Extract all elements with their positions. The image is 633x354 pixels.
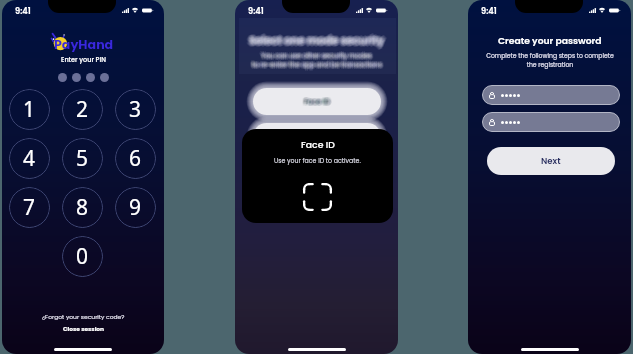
staticText: You can use other security modes [263,51,374,60]
button[interactable]: 4 [9,138,50,179]
staticText: Select one mode security [251,33,386,48]
staticText: Face ID [303,99,329,109]
staticText: Select one mode security [250,33,385,48]
staticText: Face ID [303,96,329,106]
staticText: Select one mode security [247,34,382,49]
staticText: to re-enter the app and be transactions [252,62,382,71]
staticText: 6 [129,144,142,173]
staticText: to re-enter the app and be transactions [253,62,383,71]
staticText: Select one mode security [250,35,385,50]
staticText: Face ID [304,95,330,105]
button[interactable]: 1 [9,89,50,130]
button[interactable] [482,112,620,132]
staticText: You can use other security modes [260,50,371,59]
staticText: You can use other security modes [263,50,374,59]
staticText: Select one mode security [248,31,383,46]
other: Scan face [303,183,332,211]
staticText: Face ID [302,97,328,107]
button[interactable]: 0 [62,236,103,277]
staticText: Face ID [306,98,332,108]
staticText: to re-enter the app and be transactions [253,61,383,70]
staticText: You can use other security modes [260,53,371,62]
staticText: Select one mode security [249,34,384,49]
staticText: You can use other security modes [263,51,374,60]
staticText: Select one mode security [248,32,383,47]
staticText: You can use other security modes [262,49,373,58]
staticText: You can use other security modes [261,50,372,59]
button[interactable]: 2 [62,89,103,130]
staticText: to re-enter the app and be transactions [251,59,381,68]
staticText: to re-enter the app and be transactions [251,60,381,69]
staticText: You can use other security modes [260,53,371,62]
staticText: Face ID [303,98,329,108]
staticText: Face ID [304,97,330,107]
staticText: You can use other security modes [259,51,370,60]
staticText: You can use other security modes [261,52,372,61]
staticText: You can use other security modes [262,51,373,60]
staticText: Select one mode security [249,36,384,51]
staticText: You can use other security modes [261,51,372,60]
button[interactable]: 9 [115,187,156,228]
staticText: Face ID [305,99,331,109]
button[interactable]: Close session [63,325,105,333]
staticText: to re-enter the app and be transactions [251,61,381,70]
staticText: Face ID [305,95,331,105]
staticText: 9 [129,193,142,222]
button[interactable] [482,85,620,105]
button[interactable]: 6 [115,138,156,179]
staticText: 9:41 [481,5,497,16]
staticText: Select one mode security [250,31,385,46]
staticText: You can use other security modes [262,51,373,60]
staticText: to re-enter the app and be transactions [252,59,382,68]
staticText: Select one mode security [248,31,383,46]
staticText: Face ID [303,95,329,105]
staticText: to re-enter the app and be transactions [253,60,383,69]
staticText: 1 [23,95,36,124]
staticText: 7 [23,193,36,222]
staticText: You can use other security modes [260,51,371,60]
staticText: 4 [23,144,36,173]
staticText: to re-enter the app and be transactions [253,58,383,67]
button[interactable]: 8 [62,187,103,228]
staticText: Select one mode security [248,35,383,50]
staticText: Select one mode security [247,35,382,50]
staticText: Face ID [301,138,335,151]
staticText: Next [541,155,561,167]
staticText: Select one mode security [247,32,382,47]
staticText: You can use other security modes [261,52,372,61]
staticText: 0 [76,242,89,271]
staticText: Create your password [498,34,602,47]
staticText: 8 [76,193,89,222]
staticText: You can use other security modes [260,51,371,60]
staticText: Select one mode security [250,33,385,48]
staticText: to re-enter the app and be transactions [253,59,383,68]
staticText: Face ID [303,97,329,107]
button[interactable]: 5 [62,138,103,179]
staticText: to re-enter the app and be transactions [252,59,382,68]
staticText: You can use other security modes [260,49,371,58]
staticText: Select one mode security [248,33,383,48]
staticText: to re-enter the app and be transactions [254,60,384,69]
button[interactable]: ¿Forgot your security code? [42,313,125,321]
staticText: 9:41 [248,5,264,16]
staticText: to re-enter the app and be transactions [251,58,381,67]
staticText: Select one mode security [251,34,386,49]
staticText: Face ID [303,95,329,105]
staticText: You can use other security modes [261,50,372,59]
staticText: PayHand [54,36,114,54]
staticText: Select one mode security [247,31,382,46]
button[interactable]: 3 [115,89,156,130]
staticText: 2 [76,95,89,124]
staticText: You can use other security modes [262,49,373,58]
button[interactable]: 7 [9,187,50,228]
staticText: Face ID [305,96,331,106]
staticText: You can use other security modes [262,53,373,62]
staticText: to re-enter the app and be transactions [251,60,381,69]
staticText: Select one mode security [248,33,383,48]
staticText: Face ID [304,99,330,109]
button[interactable] [246,116,388,157]
button[interactable]: Face ID [246,81,388,122]
staticText: You can use other security modes [260,52,371,61]
button[interactable]: Next [487,147,615,175]
staticText: Face ID [306,97,332,107]
